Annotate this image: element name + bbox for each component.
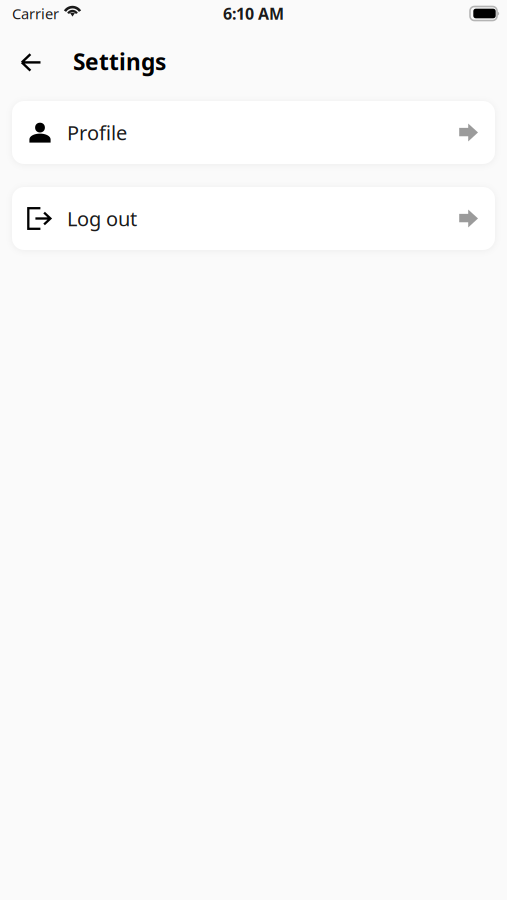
- staticText: Profile: [67, 119, 127, 146]
- staticText: Log out: [67, 205, 137, 232]
- button[interactable]: Log out: [12, 187, 495, 250]
- button[interactable]: Back: [10, 40, 52, 82]
- staticText: Settings: [73, 46, 166, 76]
- staticText: 6:10 AM: [223, 3, 284, 24]
- staticText: Carrier: [12, 4, 59, 23]
- button[interactable]: Profile: [12, 101, 495, 164]
